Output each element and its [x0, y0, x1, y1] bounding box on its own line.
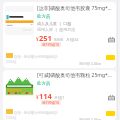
staticText: 处方药: [37, 81, 51, 87]
staticText: 月销1: [54, 95, 65, 100]
button[interactable]: Add to cart: [107, 35, 116, 44]
staticText: 30分钟 2.4km: [79, 61, 101, 66]
staticText: 自营 · 康佰馨大药房(旗舰店): [14, 54, 58, 59]
staticText: 30分钟 2.4km: [79, 117, 101, 120]
staticText: 处方药: [37, 14, 51, 20]
staticText: 适用人群 | 使用方法: [37, 27, 76, 32]
staticText: [可威]磷酸奥司他韦颗粒 25mg*10袋: [37, 72, 114, 79]
staticText: ¥268: [54, 37, 64, 42]
button[interactable]: 自营 · 康佰馨大药房(旗舰店): [5, 106, 116, 120]
staticText: 月销34: [66, 37, 79, 42]
staticText: 114: [39, 91, 52, 101]
button[interactable]: [达菲]磷酸奥司他韦胶囊 75mg*10粒: [3, 2, 116, 68]
button[interactable]: 自营 · 康佰馨大药房(旗舰店): [5, 50, 116, 68]
staticText: ¥: [36, 36, 39, 42]
button[interactable]: [可威]磷酸奥司他韦颗粒 25mg*10袋: [3, 70, 116, 120]
staticText: 满199减10: [42, 42, 60, 47]
staticText: 药急送: [6, 116, 17, 120]
staticText: 满199减10: [42, 100, 60, 105]
staticText: 成人及儿童 | 口服: [37, 21, 72, 26]
button[interactable]: Add to cart: [107, 93, 116, 102]
staticText: ¥: [36, 94, 39, 100]
staticText: 自营 · 康佰馨大药房(旗舰店): [14, 110, 58, 115]
staticText: [达菲]磷酸奥司他韦胶囊 75mg*10粒: [37, 5, 114, 12]
staticText: 药急送: [6, 60, 17, 64]
staticText: 251: [39, 33, 52, 43]
